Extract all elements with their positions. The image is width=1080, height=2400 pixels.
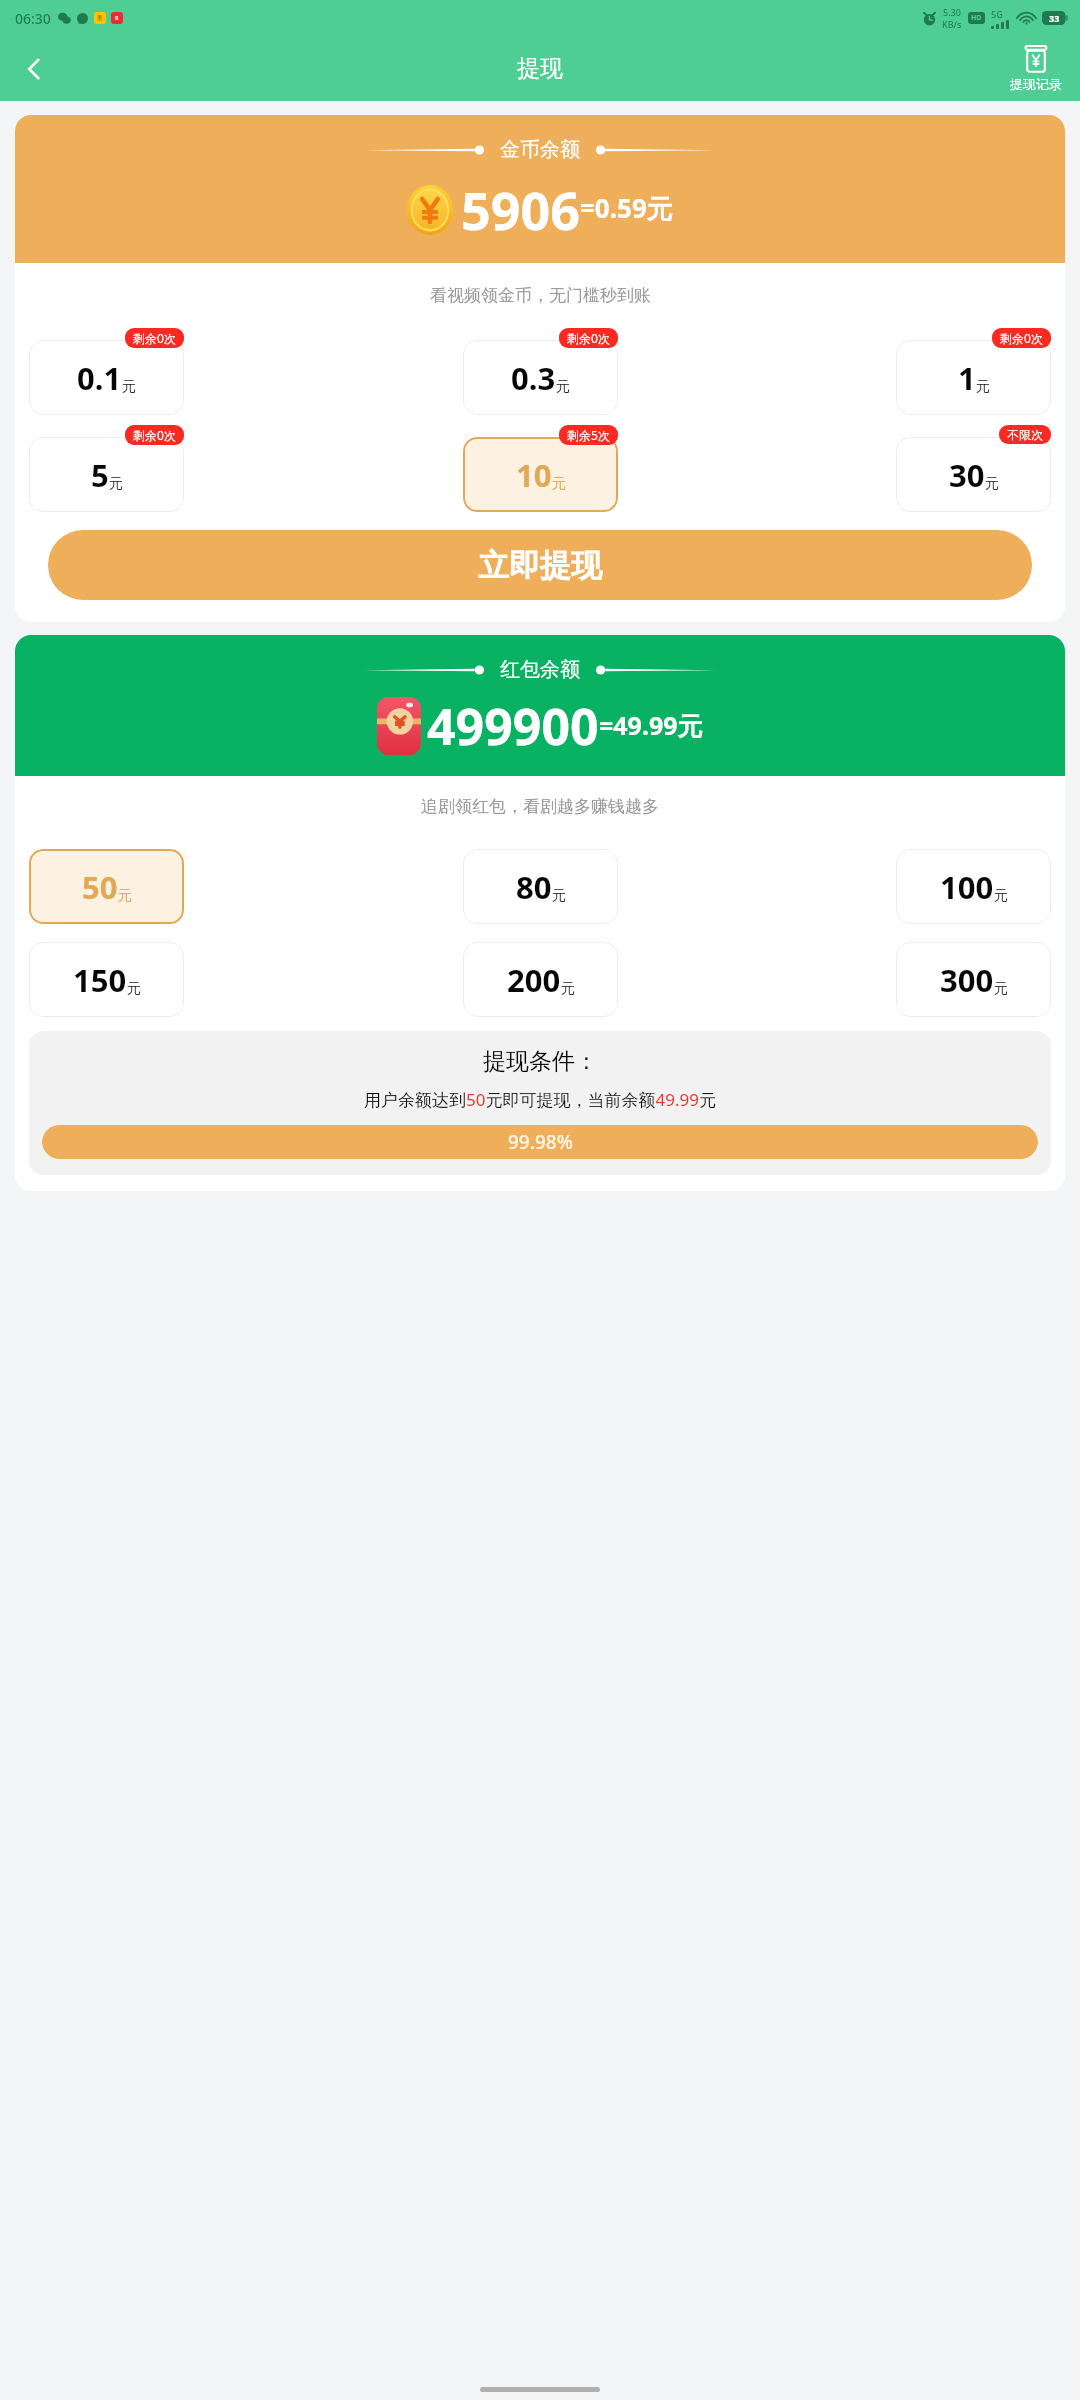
- staticText: 元: [985, 475, 999, 493]
- button[interactable]: 100: [896, 849, 1051, 924]
- button[interactable]: 0.3: [463, 340, 618, 415]
- button[interactable]: 150: [29, 942, 184, 1017]
- staticText: 元: [994, 980, 1008, 998]
- staticText: 10: [516, 454, 552, 496]
- staticText: 提现条件：: [483, 1047, 598, 1076]
- staticText: 美: [97, 14, 103, 22]
- button[interactable]: 5: [29, 437, 184, 512]
- staticText: 99.98%: [508, 1129, 573, 1155]
- staticText: 元: [552, 887, 566, 905]
- staticText: 金币余额: [500, 137, 580, 162]
- staticText: 200: [507, 959, 561, 1001]
- staticText: =0.59元: [580, 190, 673, 226]
- staticText: 300: [940, 959, 994, 1001]
- staticText: 30: [949, 454, 985, 496]
- staticText: 提现记录: [1010, 76, 1062, 92]
- staticText: 元: [552, 475, 566, 493]
- staticText: 不限次: [1007, 427, 1043, 442]
- staticText: 499900: [427, 692, 599, 760]
- staticText: 150: [73, 959, 127, 1001]
- staticText: 用户余额达到50元即可提现，当前余额49.99元: [364, 1088, 716, 1111]
- staticText: 1: [958, 357, 976, 399]
- staticText: 06:30: [15, 9, 51, 28]
- staticText: KB/s: [942, 18, 962, 30]
- staticText: 8: [115, 14, 119, 22]
- staticText: 剩余5次: [567, 427, 610, 443]
- staticText: 看视频领金币，无门槛秒到账: [430, 285, 651, 306]
- staticText: 元: [556, 378, 570, 396]
- staticText: 提现: [517, 54, 563, 83]
- staticText: 0.3: [511, 357, 556, 399]
- staticText: 80: [516, 866, 552, 908]
- button[interactable]: 立即提现: [48, 530, 1032, 600]
- staticText: 5906: [461, 174, 580, 245]
- staticText: HD: [971, 13, 982, 23]
- staticText: =49.99元: [599, 708, 703, 742]
- staticText: 5G: [991, 8, 1003, 20]
- staticText: 元: [127, 980, 141, 998]
- staticText: 红包余额: [500, 657, 580, 682]
- button[interactable]: 200: [463, 942, 618, 1017]
- button[interactable]: 10: [463, 437, 618, 512]
- staticText: 元: [109, 475, 123, 493]
- button[interactable]: 提现记录: [1006, 44, 1066, 94]
- staticText: 元: [561, 980, 575, 998]
- staticText: 元: [976, 378, 990, 396]
- button[interactable]: 50: [29, 849, 184, 924]
- button[interactable]: 80: [463, 849, 618, 924]
- staticText: 元: [994, 887, 1008, 905]
- staticText: 剩余0次: [567, 330, 610, 346]
- staticText: 50: [82, 866, 118, 908]
- staticText: 元: [118, 887, 132, 905]
- button[interactable]: 1: [896, 340, 1051, 415]
- staticText: 剩余0次: [133, 427, 176, 443]
- staticText: 5.30: [943, 6, 961, 18]
- staticText: 5: [91, 454, 109, 496]
- button[interactable]: Back: [6, 41, 62, 97]
- staticText: 0.1: [77, 357, 122, 399]
- staticText: 追剧领红包，看剧越多赚钱越多: [421, 796, 659, 817]
- staticText: 元: [122, 378, 136, 396]
- button[interactable]: 0.1: [29, 340, 184, 415]
- staticText: 100: [940, 866, 994, 908]
- staticText: 立即提现: [478, 546, 602, 585]
- staticText: 剩余0次: [133, 330, 176, 346]
- button[interactable]: 300: [896, 942, 1051, 1017]
- staticText: 33: [1049, 12, 1060, 24]
- staticText: 剩余0次: [1000, 330, 1043, 346]
- button[interactable]: 30: [896, 437, 1051, 512]
